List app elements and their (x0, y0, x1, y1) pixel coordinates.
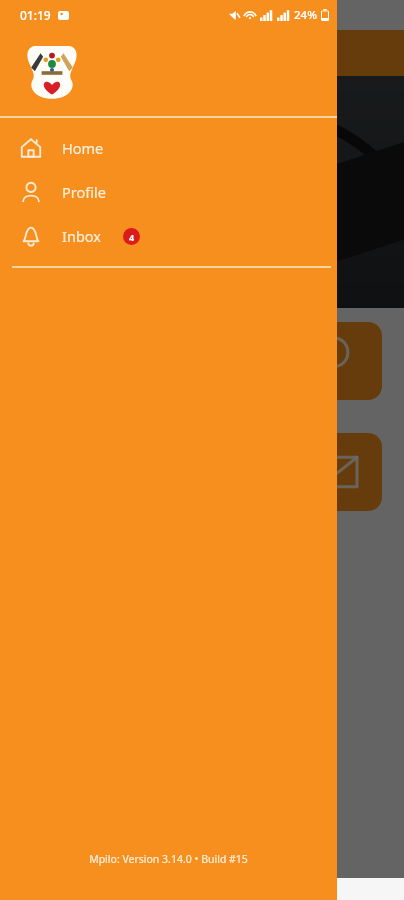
button[interactable]: Inbox (0, 214, 337, 258)
staticText: Home (62, 138, 104, 158)
other: Home (20, 137, 42, 159)
staticText: Profile (62, 182, 106, 202)
button[interactable]: Profile (0, 170, 337, 214)
button[interactable]: Home (0, 126, 337, 170)
staticText: Inbox (62, 226, 101, 246)
staticText: Mpilo: Version 3.14.0 • Build #15 (0, 852, 337, 866)
staticText: 01:19 (20, 7, 51, 23)
staticText: 4 (129, 231, 135, 243)
other: Profile (20, 181, 42, 203)
other: Inbox (20, 225, 42, 247)
staticText: 24% (294, 7, 317, 23)
